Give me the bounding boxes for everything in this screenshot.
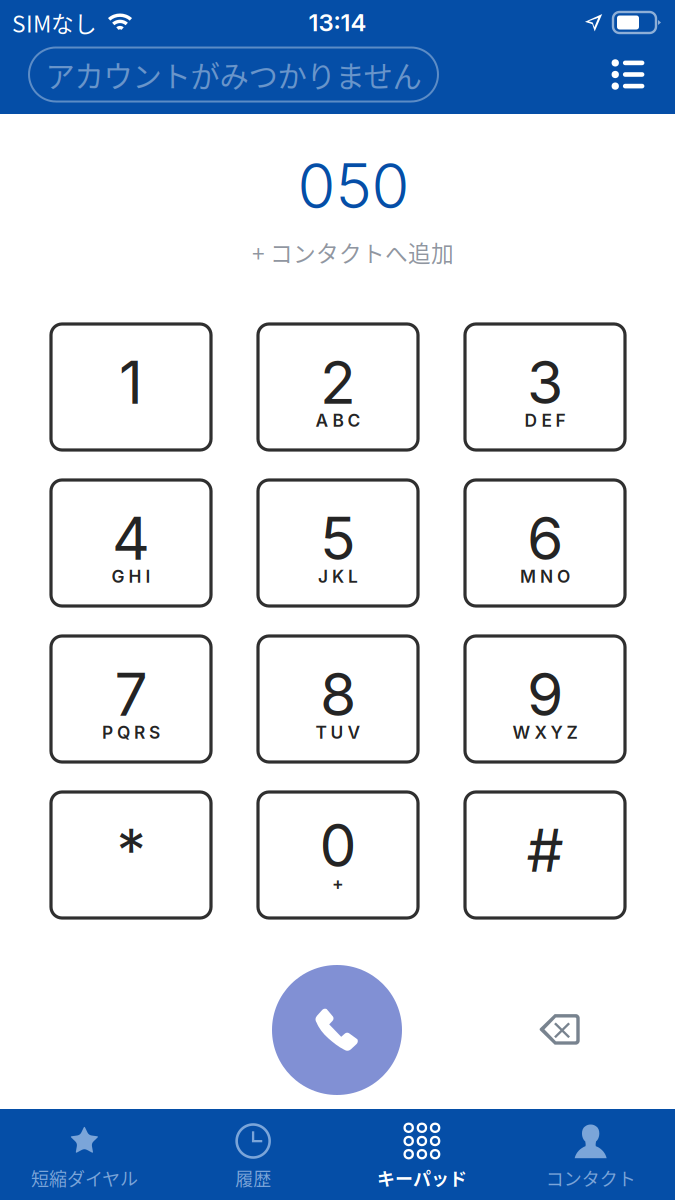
staticText: W X Y Z bbox=[512, 722, 577, 743]
button[interactable]: キーパッド bbox=[337, 1109, 506, 1200]
button[interactable]: 4 bbox=[51, 480, 211, 606]
button[interactable]: Recents bbox=[603, 49, 653, 99]
staticText: キーパッド bbox=[377, 1165, 467, 1191]
button[interactable]: 1 bbox=[51, 324, 211, 450]
staticText: 9 bbox=[527, 659, 563, 730]
staticText: G H I bbox=[111, 566, 150, 587]
button[interactable]: 履歴 bbox=[169, 1109, 338, 1200]
button[interactable]: 短縮ダイヤル bbox=[0, 1109, 169, 1200]
staticText: 1 bbox=[119, 347, 143, 418]
button[interactable]: 2 bbox=[258, 324, 418, 450]
button[interactable]: # bbox=[465, 792, 625, 918]
staticText: A B C bbox=[315, 410, 360, 431]
staticText: 2 bbox=[320, 347, 356, 418]
button[interactable]: コンタクト bbox=[506, 1109, 675, 1200]
button[interactable]: 8 bbox=[258, 636, 418, 762]
button[interactable]: * bbox=[51, 792, 211, 918]
staticText: 5 bbox=[320, 503, 356, 574]
button[interactable]: 5 bbox=[258, 480, 418, 606]
staticText: * bbox=[116, 815, 145, 886]
staticText: 7 bbox=[114, 659, 147, 730]
staticText: 6 bbox=[527, 503, 563, 574]
staticText: 4 bbox=[112, 503, 150, 574]
button[interactable]: 0 bbox=[258, 792, 418, 918]
staticText: 履歴 bbox=[235, 1165, 271, 1191]
button[interactable]: Call bbox=[272, 965, 402, 1095]
button[interactable]: 7 bbox=[51, 636, 211, 762]
staticText: アカウントがみつかりません bbox=[45, 53, 421, 96]
staticText: SIMなし bbox=[12, 6, 97, 39]
staticText: J K L bbox=[318, 566, 358, 587]
staticText: T U V bbox=[315, 722, 360, 743]
staticText: D E F bbox=[524, 410, 565, 431]
staticText: + bbox=[332, 873, 344, 894]
button[interactable]: Delete bbox=[517, 987, 603, 1073]
staticText: # bbox=[526, 815, 563, 886]
staticText: 短縮ダイヤル bbox=[31, 1165, 138, 1191]
staticText: 13:14 bbox=[308, 8, 366, 37]
button[interactable]: 3 bbox=[465, 324, 625, 450]
staticText: コンタクト bbox=[546, 1165, 636, 1191]
staticText: M N O bbox=[520, 566, 570, 587]
staticText: 050 bbox=[297, 149, 409, 223]
staticText: P Q R S bbox=[102, 722, 160, 743]
staticText: 3 bbox=[527, 347, 563, 418]
staticText: 8 bbox=[320, 659, 356, 730]
button[interactable]: 6 bbox=[465, 480, 625, 606]
button[interactable]: 9 bbox=[465, 636, 625, 762]
staticText: 0 bbox=[319, 810, 356, 881]
button[interactable]: アカウントがみつかりません bbox=[29, 47, 438, 111]
staticText: + コンタクトへ追加 bbox=[252, 236, 454, 268]
